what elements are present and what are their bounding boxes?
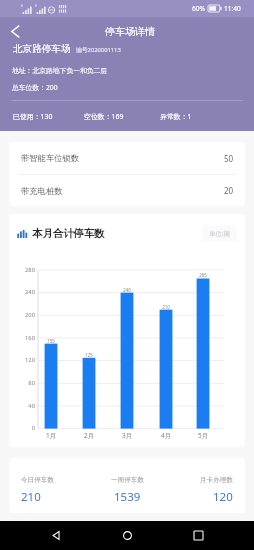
staticText: 总车位数：200	[12, 83, 58, 92]
staticText: 3月	[115, 431, 139, 440]
button[interactable]: 带充电桩数	[9, 175, 245, 206]
staticText: 150	[39, 338, 63, 344]
staticText: 5月	[191, 431, 215, 440]
staticText: 200	[9, 311, 35, 319]
staticText: 本月合计停车数	[32, 227, 105, 240]
staticText: 4月	[154, 431, 178, 440]
button[interactable]: 月卡办理数	[200, 476, 233, 484]
button[interactable]: 带智能车位锁数	[9, 142, 245, 174]
button[interactable]: Back	[2, 18, 28, 44]
staticText: 265	[191, 272, 215, 278]
staticText: 240	[115, 287, 139, 293]
button[interactable]: 120	[213, 489, 233, 505]
staticText: 240	[9, 288, 35, 296]
button[interactable]: Home	[112, 521, 142, 550]
staticText: 60%	[192, 4, 206, 13]
staticText: 编号2020001113	[76, 46, 121, 54]
staticText: 地址：北京路地下负一和负二层	[12, 66, 108, 75]
staticText: 120	[9, 356, 35, 364]
staticText: 北京路停车场	[13, 43, 71, 55]
staticText: 20	[224, 185, 234, 196]
button[interactable]: 1539	[114, 489, 141, 505]
staticText: 2月	[77, 431, 101, 440]
staticText: 带充电桩数	[21, 186, 63, 196]
staticText: 125	[77, 352, 101, 358]
staticText: 40	[9, 402, 35, 410]
button[interactable]: 今日停车数	[21, 476, 54, 484]
staticText: 160	[9, 334, 35, 342]
button[interactable]: Recent apps	[183, 521, 213, 550]
staticText: 单位:辆	[209, 229, 230, 238]
button[interactable]: Back	[41, 521, 71, 550]
staticText: 空位数：169	[84, 112, 124, 121]
staticText: 11:40	[224, 4, 241, 13]
staticText: 带智能车位锁数	[21, 153, 80, 163]
staticText: 已使用：130	[13, 112, 53, 121]
staticText: 210	[154, 304, 178, 310]
staticText: 280	[9, 266, 35, 274]
button[interactable]: 一周停车数	[111, 476, 144, 484]
staticText: 0	[9, 424, 35, 432]
staticText: 停车场详情	[105, 25, 155, 38]
button[interactable]: 210	[21, 489, 41, 505]
staticText: 50	[224, 153, 234, 164]
staticText: 1月	[39, 431, 63, 440]
staticText: 80	[9, 379, 35, 387]
staticText: 异常数：1	[160, 112, 192, 121]
